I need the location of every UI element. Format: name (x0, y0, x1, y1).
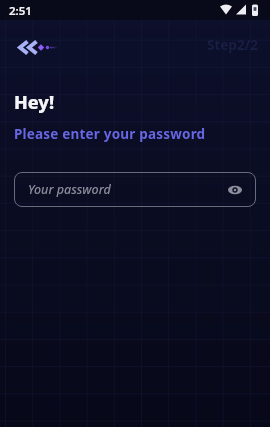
staticText: Hey! (14, 90, 55, 115)
staticText: 2:51 (9, 3, 32, 19)
staticText: Please enter your password (14, 125, 206, 143)
staticText: Step2/2 (207, 36, 258, 54)
staticText: Your password (28, 181, 111, 198)
